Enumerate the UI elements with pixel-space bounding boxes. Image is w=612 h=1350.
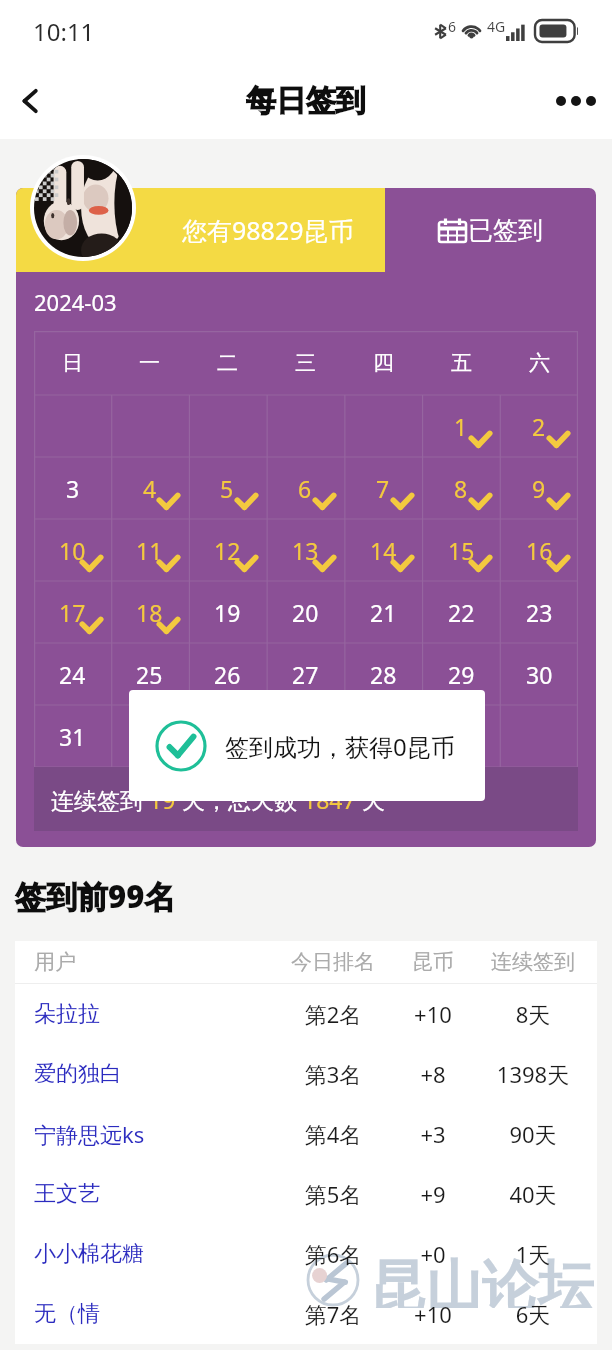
staticText: 10:11 [33,15,95,48]
staticText: 27 [292,659,319,690]
staticText: 1天 [483,1239,583,1269]
staticText: 第7名 [283,1299,383,1329]
staticText: 18 [136,597,163,628]
staticText: 1398天 [483,1059,583,1089]
staticText: +3 [383,1119,483,1149]
staticText: 24 [59,659,86,690]
staticText: 14 [370,535,397,566]
staticText: 今日排名 [283,949,383,975]
staticText: 30 [526,659,553,690]
staticText: 每日签到 [246,82,366,120]
staticText: 一 [139,350,160,376]
staticText: 26 [214,659,241,690]
staticText: 爱的独白 [34,1060,283,1088]
button[interactable]: Back [0,62,62,139]
staticText: 3 [66,473,80,504]
staticText: 4 [143,473,157,504]
staticText: 六 [529,350,550,376]
button[interactable]: 宁静思远ks [15,1104,597,1164]
staticText: 您有98829昆币 [182,213,354,247]
staticText: 三 [295,350,316,376]
staticText: 19 [214,597,241,628]
staticText: 5 [220,473,234,504]
staticText: 昆山论坛 [370,1252,594,1308]
staticText: +10 [383,1299,483,1329]
staticText: 天 [356,784,385,815]
staticText: 1 [454,411,468,442]
staticText: 日 [62,350,83,376]
staticText: 17 [59,597,86,628]
staticText: 已签到 [468,215,543,246]
staticText: 8天 [483,999,583,1029]
staticText: 6天 [483,1299,583,1329]
staticText: +8 [383,1059,483,1089]
staticText: +10 [383,999,483,1029]
staticText: 21 [370,597,397,628]
staticText: 签到成功，获得0昆币 [225,730,455,763]
staticText: 二 [217,350,238,376]
staticText: 无（情 [34,1300,283,1328]
staticText: 连续签到 [51,784,149,815]
staticText: 8 [454,473,468,504]
staticText: 25 [136,659,163,690]
staticText: 第4名 [283,1119,383,1149]
staticText: 28 [370,659,397,690]
staticText: 第6名 [283,1239,383,1269]
staticText: 31 [59,721,86,752]
staticText: 昆币 [383,949,483,975]
staticText: 天，总天数 [176,784,303,815]
staticText: 小小棉花糖 [34,1240,283,1268]
staticText: 16 [526,535,553,566]
button[interactable]: 王文艺 [15,1164,597,1224]
staticText: 宁静思远ks [34,1119,283,1149]
button[interactable]: 朵拉拉 [15,984,597,1044]
staticText: +0 [383,1239,483,1269]
staticText: 朵拉拉 [34,1000,283,1028]
staticText: 19 [149,784,176,815]
staticText: 五 [451,350,472,376]
staticText: 第5名 [283,1179,383,1209]
button[interactable]: 已签到 [385,188,596,272]
staticText: 6 [448,17,457,36]
button[interactable]: More options [540,62,612,139]
staticText: 11 [136,535,163,566]
staticText: 2 [532,411,546,442]
staticText: 12 [214,535,241,566]
staticText: 第2名 [283,999,383,1029]
staticText: 连续签到 [483,949,583,975]
staticText: 2024-03 [34,287,117,317]
staticText: 40天 [483,1179,583,1209]
staticText: 15 [448,535,475,566]
staticText: 王文艺 [34,1180,283,1208]
staticText: 9 [532,473,546,504]
staticText: 第3名 [283,1059,383,1089]
staticText: 20 [292,597,319,628]
button[interactable]: 无（情 [15,1284,597,1344]
staticText: 4G [487,17,506,36]
staticText: 签到前99名 [15,875,176,917]
staticText: 四 [373,350,394,376]
staticText: 22 [448,597,475,628]
staticText: 7 [376,473,390,504]
staticText: 29 [448,659,475,690]
staticText: 用户 [34,949,283,975]
button[interactable]: 爱的独白 [15,1044,597,1104]
staticText: 10 [59,535,86,566]
staticText: 6 [298,473,312,504]
staticText: 1847 [303,784,356,815]
staticText: +9 [383,1179,483,1209]
button[interactable]: 小小棉花糖 [15,1224,597,1284]
staticText: 23 [526,597,553,628]
staticText: 90天 [483,1119,583,1149]
staticText: 13 [292,535,319,566]
